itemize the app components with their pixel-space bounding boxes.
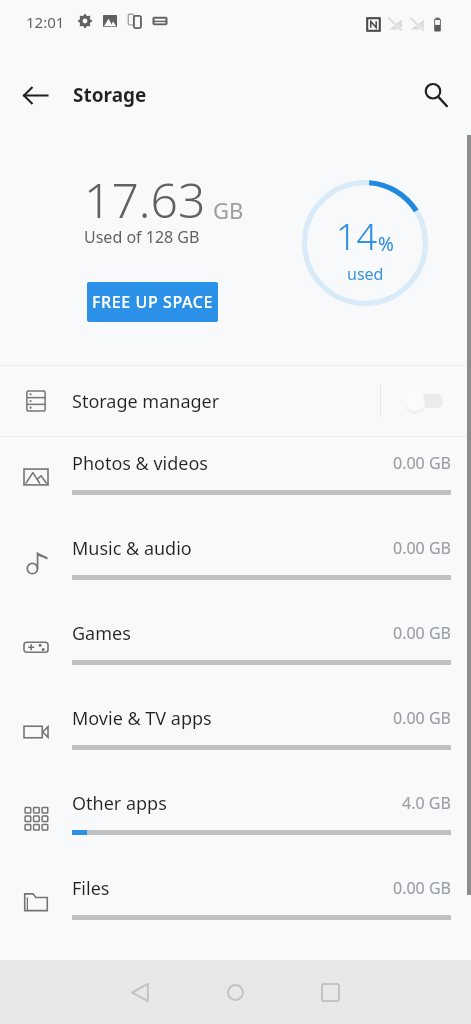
staticText: 12:01 bbox=[26, 12, 65, 32]
staticText: Storage bbox=[73, 82, 147, 108]
staticText: GB bbox=[213, 195, 244, 225]
button[interactable]: Files bbox=[0, 862, 471, 947]
button[interactable]: Movie & TV apps bbox=[0, 692, 471, 777]
button[interactable]: Games bbox=[0, 607, 471, 692]
staticText: 17.63 bbox=[84, 167, 206, 232]
button[interactable]: Back bbox=[11, 71, 59, 119]
staticText: Used of 128 GB bbox=[84, 226, 200, 248]
button[interactable]: Toggle storage manager bbox=[395, 380, 453, 422]
staticText: 0.00 GB bbox=[393, 452, 451, 474]
staticText: 4.0 GB bbox=[402, 792, 451, 814]
staticText: Files bbox=[72, 876, 110, 901]
staticText: 0.00 GB bbox=[393, 537, 451, 559]
staticText: Photos & videos bbox=[72, 451, 208, 476]
button[interactable]: Back bbox=[110, 960, 170, 1024]
staticText: Games bbox=[72, 621, 131, 646]
staticText: 14 bbox=[336, 212, 378, 261]
button[interactable]: Photos & videos bbox=[0, 437, 471, 522]
staticText: Music & audio bbox=[72, 536, 192, 561]
staticText: Storage manager bbox=[72, 389, 220, 414]
button[interactable]: Other apps bbox=[0, 777, 471, 862]
button[interactable]: Home bbox=[205, 960, 265, 1024]
button[interactable]: Search bbox=[411, 70, 459, 118]
staticText: 0.00 GB bbox=[393, 707, 451, 729]
button[interactable]: Storage manager bbox=[0, 366, 471, 436]
button[interactable]: Recent apps bbox=[300, 960, 360, 1024]
staticText: 0.00 GB bbox=[393, 877, 451, 899]
staticText: % bbox=[378, 231, 394, 257]
button[interactable]: Music & audio bbox=[0, 522, 471, 607]
staticText: used bbox=[347, 263, 384, 285]
button[interactable]: FREE UP SPACE bbox=[87, 282, 218, 322]
staticText: 0.00 GB bbox=[393, 622, 451, 644]
staticText: FREE UP SPACE bbox=[92, 291, 214, 313]
staticText: Other apps bbox=[72, 791, 167, 816]
staticText: Movie & TV apps bbox=[72, 706, 212, 731]
